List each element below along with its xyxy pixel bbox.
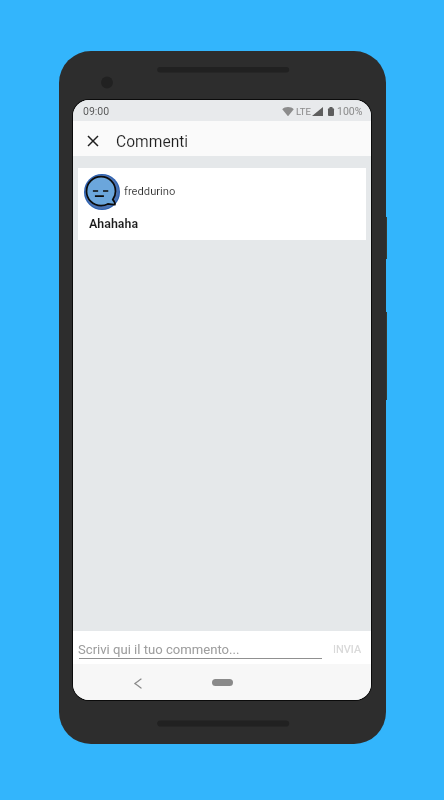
staticText: Ahahaha <box>89 216 139 231</box>
staticText: freddurino <box>124 185 176 198</box>
button[interactable]: INVIA <box>330 639 364 659</box>
staticText: Scrivi qui il tuo commento... <box>78 642 240 657</box>
button[interactable]: freddurino <box>78 168 366 240</box>
staticText: LTE <box>296 106 311 117</box>
button[interactable]: Home <box>212 679 233 686</box>
staticText: 09:00 <box>83 105 110 117</box>
button[interactable]: Indietro <box>126 671 150 695</box>
staticText: INVIA <box>333 643 362 656</box>
button[interactable]: Chiudi <box>79 127 107 155</box>
staticText: Commenti <box>116 133 189 151</box>
staticText: 100% <box>337 105 363 117</box>
